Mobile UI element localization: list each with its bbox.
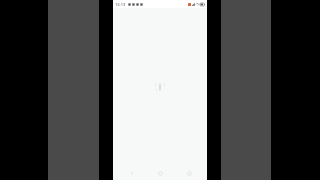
button[interactable]: Home <box>150 166 170 180</box>
button[interactable]: Recent apps <box>179 166 199 180</box>
staticText: 13:13 <box>115 2 126 7</box>
button[interactable]: Loading <box>153 80 167 94</box>
